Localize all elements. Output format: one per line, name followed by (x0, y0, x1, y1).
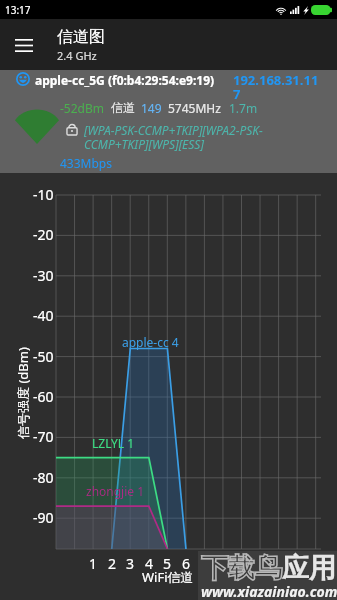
staticText: apple-cc 4 (122, 334, 179, 350)
staticText: 1 (89, 554, 98, 573)
button[interactable]: Open navigation menu (0, 21, 48, 69)
staticText: -52dBm (60, 100, 104, 116)
staticText: 4 (145, 554, 154, 573)
staticText: 192.168.31.117 (233, 71, 321, 103)
staticText: -20 (33, 225, 54, 244)
staticText: -10 (33, 185, 54, 204)
staticText: 10 (252, 554, 269, 573)
staticText: 5745MHz (168, 100, 221, 116)
staticText: 11 (271, 554, 288, 573)
staticText: www.xiazainiao.com (201, 582, 337, 600)
staticText: 1.7m (229, 100, 258, 116)
staticText: 下载鸟 (201, 551, 282, 585)
staticText: 9 (238, 554, 247, 573)
staticText: 7 (201, 554, 210, 573)
staticText: apple-cc_5G (f0:b4:29:54:e9:19) (35, 72, 215, 88)
staticText: LZLYL 1 (92, 435, 135, 451)
staticText: 149 (141, 100, 162, 116)
staticText: 6 (182, 554, 191, 573)
staticText: 12 (289, 554, 306, 573)
staticText: -60 (33, 387, 54, 406)
staticText: -80 (33, 468, 54, 487)
staticText: 5 (163, 554, 172, 573)
staticText: zhongjie 1 (86, 483, 145, 499)
staticText: WiFi信道 (142, 568, 194, 586)
staticText: -70 (33, 427, 54, 446)
staticText: [WPA-PSK-CCMP+TKIP][WPA2-PSK-CCMP+TKIP][… (84, 122, 296, 153)
staticText: 433Mbps (60, 155, 112, 171)
staticText: 应用 (282, 551, 336, 585)
staticText: 13 (308, 554, 325, 573)
staticText: 2 (108, 554, 117, 573)
staticText: -50 (33, 347, 54, 366)
staticText: 3 (126, 554, 135, 573)
staticText: 2.4 GHz (57, 48, 97, 63)
staticText: 13:17 (5, 3, 31, 17)
staticText: -90 (33, 508, 54, 527)
staticText: 信道 (111, 100, 135, 115)
staticText: -30 (33, 266, 54, 285)
staticText: 信道图 (57, 27, 105, 47)
staticText: -40 (33, 306, 54, 325)
staticText: 信号强度 (dBm) (14, 347, 32, 439)
staticText: 8 (219, 554, 228, 573)
